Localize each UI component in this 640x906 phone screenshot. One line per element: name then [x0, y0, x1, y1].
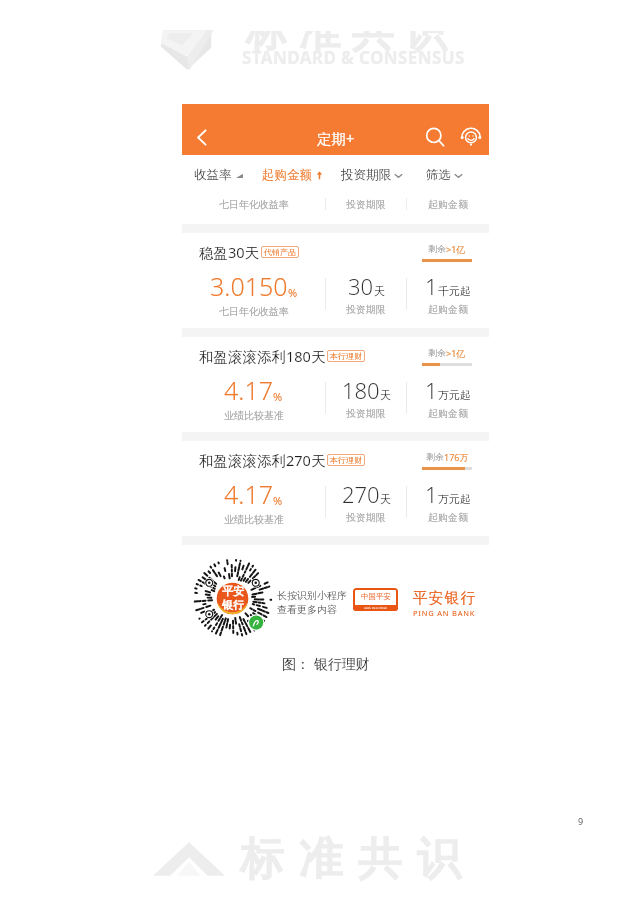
staticText: 稳盈30天 — [199, 242, 260, 262]
staticText: 投资期限 — [346, 511, 386, 524]
staticText: 起购金额 — [262, 167, 312, 183]
staticText: 180 — [342, 375, 380, 405]
staticText: 起购金额 — [428, 407, 468, 420]
staticText: 筛选 — [426, 167, 451, 183]
staticText: 万元起 — [438, 388, 471, 402]
button[interactable]: 收益率 — [193, 163, 245, 187]
staticText: 本行理财 — [330, 351, 362, 361]
staticText: 本行理财 — [330, 455, 362, 465]
staticText: 天 — [374, 284, 385, 298]
staticText: % — [288, 285, 298, 300]
staticText: 收益率 — [194, 167, 232, 183]
staticText: 剩余 — [426, 451, 444, 462]
staticText: 千元起 — [438, 284, 471, 298]
staticText: 标准共识 — [232, 832, 468, 887]
staticText: 天 — [380, 388, 391, 402]
button[interactable]: Customer service — [454, 120, 488, 154]
staticText: 176万 — [444, 451, 469, 463]
staticText: 平安 — [222, 584, 244, 598]
staticText: 9 — [578, 815, 584, 827]
staticText: 标准共识 — [240, 6, 452, 59]
staticText: 起购金额 — [428, 303, 468, 316]
staticText: 业绩比较基准 — [224, 409, 284, 422]
staticText: 平安银行 — [412, 589, 476, 608]
button[interactable]: Back — [184, 120, 218, 154]
staticText: 投资期限 — [346, 198, 386, 211]
button[interactable]: 稳盈30天 — [182, 233, 489, 328]
staticText: 起购金额 — [428, 511, 468, 524]
staticText: >1亿 — [446, 243, 466, 255]
staticText: 万元起 — [438, 492, 471, 506]
staticText: 30 — [348, 271, 374, 301]
staticText: 银行 — [222, 598, 244, 612]
staticText: 和盈滚滚添利270天 — [199, 450, 326, 470]
staticText: 投资期限 — [341, 167, 391, 183]
staticText: 4.17 — [224, 477, 273, 511]
staticText: 天 — [380, 492, 391, 506]
staticText: 3.0150 — [210, 269, 288, 303]
staticText: 1 — [425, 375, 438, 405]
staticText: STANDARD & CONSENSUS — [242, 46, 465, 69]
staticText: 定期+ — [317, 128, 355, 148]
staticText: 剩余 — [428, 243, 446, 254]
button[interactable]: 和盈滚滚添利180天 — [182, 337, 489, 432]
staticText: 七日年化收益率 — [219, 198, 289, 211]
staticText: >1亿 — [446, 347, 466, 359]
staticText: 保险 银行 投资 — [364, 606, 387, 611]
button[interactable]: 起购金额 — [261, 163, 325, 187]
staticText: 代销产品 — [264, 247, 296, 257]
staticText: 270 — [342, 479, 380, 509]
staticText: 七日年化收益率 — [219, 305, 289, 318]
staticText: 中国平安 — [361, 592, 391, 601]
button[interactable]: 和盈滚滚添利270天 — [182, 441, 489, 536]
staticText: 和盈滚滚添利180天 — [199, 346, 326, 366]
staticText: 图： 银行理财 — [282, 654, 370, 673]
staticText: 投资期限 — [346, 407, 386, 420]
staticText: 1 — [425, 479, 438, 509]
staticText: PING AN BANK — [413, 608, 476, 618]
button[interactable]: 投资期限 — [340, 163, 404, 187]
staticText: 剩余 — [428, 347, 446, 358]
staticText: 1 — [425, 271, 438, 301]
staticText: 起购金额 — [428, 198, 468, 211]
staticText: 4.17 — [224, 373, 273, 407]
button[interactable]: 筛选 — [425, 163, 464, 187]
staticText: 长按识别小程序 — [277, 589, 347, 602]
staticText: 查看更多内容 — [277, 603, 337, 616]
staticText: 投资期限 — [346, 303, 386, 316]
staticText: 业绩比较基准 — [224, 513, 284, 526]
staticText: % — [273, 389, 283, 404]
button[interactable]: Search — [418, 120, 452, 154]
staticText: % — [273, 493, 283, 508]
